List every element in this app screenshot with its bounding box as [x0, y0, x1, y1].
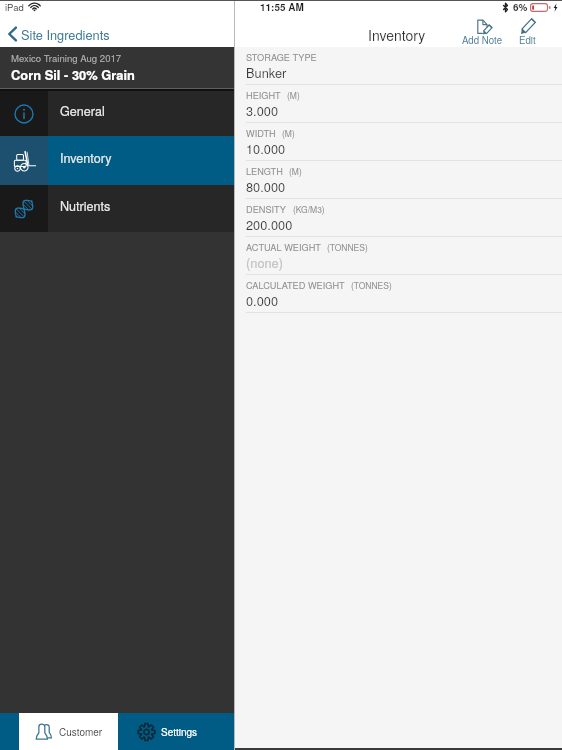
staticText: (M) [282, 127, 295, 139]
staticText: Add Note [462, 33, 503, 47]
staticText: DENSITY [246, 202, 287, 215]
staticText: STORAGE TYPE [246, 50, 317, 63]
staticText: 10.000 [246, 139, 286, 157]
staticText: (M) [287, 89, 300, 101]
button[interactable]: HEIGHT [235, 85, 562, 123]
staticText: 6% [513, 0, 528, 14]
staticText: HEIGHT [246, 88, 281, 101]
button[interactable]: STORAGE TYPE [235, 47, 562, 85]
staticText: General [60, 102, 105, 120]
button[interactable]: Settings [118, 713, 234, 750]
staticText: ACTUAL WEIGHT [246, 240, 321, 253]
staticText: 11:55 AM [260, 0, 304, 14]
staticText: LENGTH [246, 164, 283, 177]
staticText: Site Ingredients [21, 25, 110, 43]
staticText: Mexico Training Aug 2017 [11, 51, 122, 65]
button[interactable]: Add Note [454, 16, 510, 47]
staticText: Inventory [60, 149, 112, 167]
staticText: Settings [161, 725, 198, 739]
staticText: 80.000 [246, 177, 286, 195]
staticText: Nutrients [60, 197, 111, 215]
staticText: (KG/M3) [293, 203, 325, 215]
staticText: Corn Sil - 30% Grain [11, 65, 135, 83]
staticText: 200.000 [246, 215, 293, 233]
staticText: 3.000 [246, 101, 279, 119]
staticText: (M) [289, 165, 302, 177]
staticText: Edit [519, 33, 536, 47]
staticText: Inventory [368, 25, 426, 45]
button[interactable]: LENGTH [235, 161, 562, 199]
button[interactable]: Edit [507, 16, 547, 47]
button[interactable]: ACTUAL WEIGHT [235, 237, 562, 275]
button[interactable]: Site Ingredients [0, 20, 235, 47]
button[interactable]: WIDTH [235, 123, 562, 161]
button[interactable]: CALCULATED WEIGHT [235, 275, 562, 313]
staticText: Bunker [246, 63, 287, 81]
staticText: CALCULATED WEIGHT [246, 278, 345, 291]
staticText: (TONNES) [351, 279, 392, 291]
button[interactable]: General [0, 91, 235, 136]
staticText: (TONNES) [327, 241, 368, 253]
staticText: WIDTH [246, 126, 276, 139]
button[interactable]: Inventory [0, 136, 235, 185]
staticText: iPad [5, 0, 24, 14]
staticText: 0.000 [246, 291, 279, 309]
button[interactable]: Nutrients [0, 185, 235, 232]
button[interactable]: Customer [19, 713, 118, 750]
staticText: (none) [246, 253, 283, 271]
button[interactable]: DENSITY [235, 199, 562, 237]
staticText: Customer [59, 725, 103, 739]
